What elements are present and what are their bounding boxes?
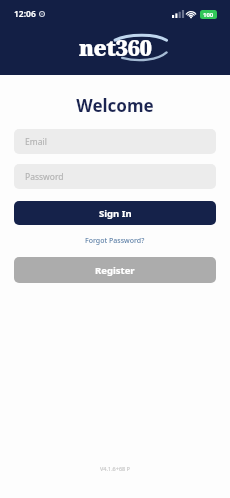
staticText: Welcome bbox=[0, 94, 230, 117]
staticText: Forgot Password? bbox=[85, 236, 145, 246]
staticText: Sign In bbox=[99, 207, 132, 220]
staticText: Email bbox=[25, 136, 47, 148]
button[interactable]: Email bbox=[14, 129, 216, 154]
staticText: Register bbox=[95, 264, 135, 277]
button[interactable]: Register bbox=[14, 257, 216, 283]
staticText: Password bbox=[25, 171, 64, 183]
staticText: V4.1.6+68 P bbox=[0, 465, 230, 472]
button[interactable]: Forgot Password? bbox=[79, 234, 151, 248]
button[interactable]: Password bbox=[14, 164, 216, 189]
button[interactable]: Sign In bbox=[14, 201, 216, 225]
staticText: 12:06 bbox=[14, 8, 36, 20]
staticText: 100 bbox=[203, 11, 214, 19]
staticText: net360 bbox=[79, 32, 152, 62]
